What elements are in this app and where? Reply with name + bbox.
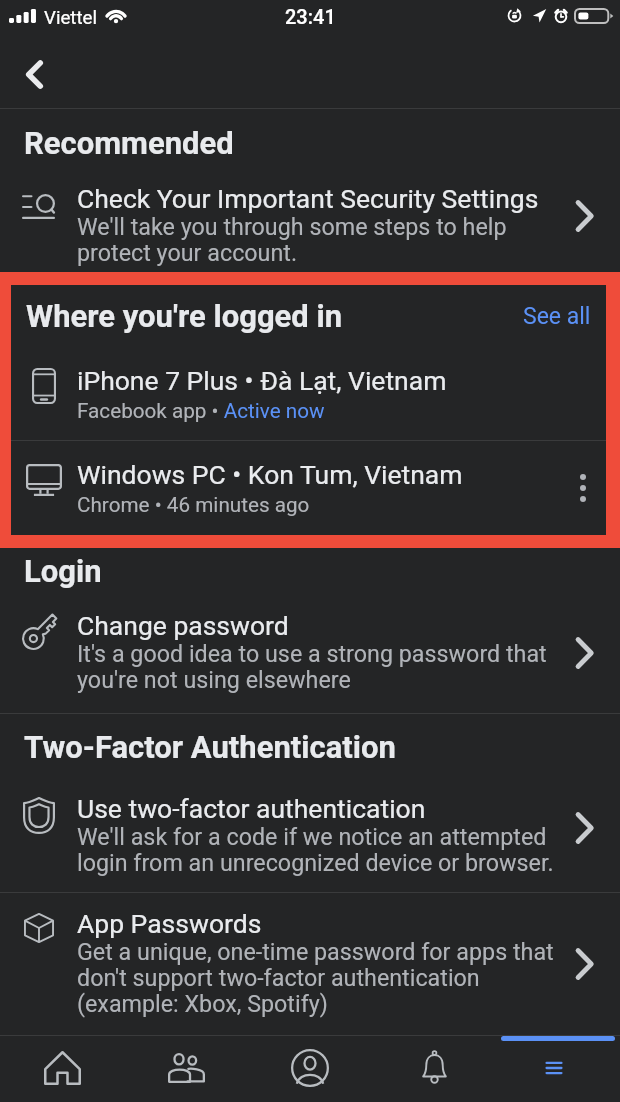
button[interactable]: App Passwords (0, 893, 620, 1034)
staticText: Use two-factor authentication (77, 791, 426, 825)
button[interactable]: More options (561, 466, 605, 510)
staticText: Where you're logged in (26, 298, 523, 334)
staticText: Login (24, 553, 102, 589)
button[interactable]: Profile (248, 1036, 372, 1102)
staticText: Get a unique, one-time password for apps… (77, 940, 555, 1018)
button[interactable]: Check Your Important Security Settings (0, 160, 620, 272)
staticText: We'll ask for a code if we notice an att… (77, 825, 555, 877)
button[interactable]: Home (0, 1036, 124, 1102)
staticText: Two-Factor Authentication (24, 729, 396, 764)
staticText: Viettel (44, 6, 98, 29)
button[interactable]: Notifications (372, 1036, 496, 1102)
staticText: It's a good idea to use a strong passwor… (77, 642, 555, 694)
staticText: Windows PC • Kon Tum, Vietnam (77, 458, 463, 491)
staticText: iPhone 7 Plus • Đà Lạt, Vietnam (77, 364, 447, 397)
staticText: 23:41 (285, 5, 336, 29)
button[interactable]: iPhone 7 Plus • Đà Lạt, Vietnam (11, 347, 606, 440)
button[interactable]: Windows PC • Kon Tum, Vietnam (11, 441, 606, 534)
button[interactable]: Friends (124, 1036, 248, 1102)
staticText: Check Your Important Security Settings (77, 181, 539, 215)
staticText: We'll take you through some steps to hel… (77, 215, 555, 267)
staticText: Change password (77, 608, 289, 642)
staticText: Chrome • 46 minutes ago (77, 491, 310, 518)
staticText: App Passwords (77, 906, 262, 940)
button[interactable]: Change password (0, 593, 620, 713)
button[interactable]: Menu (496, 1036, 620, 1102)
button[interactable]: Where you're logged in (11, 285, 606, 347)
staticText: Facebook app • Active now (77, 397, 325, 424)
staticText: Recommended (24, 125, 234, 160)
button[interactable]: Back (8, 48, 60, 100)
button[interactable]: Use two-factor authentication (0, 764, 620, 892)
staticText: See all (523, 302, 591, 330)
